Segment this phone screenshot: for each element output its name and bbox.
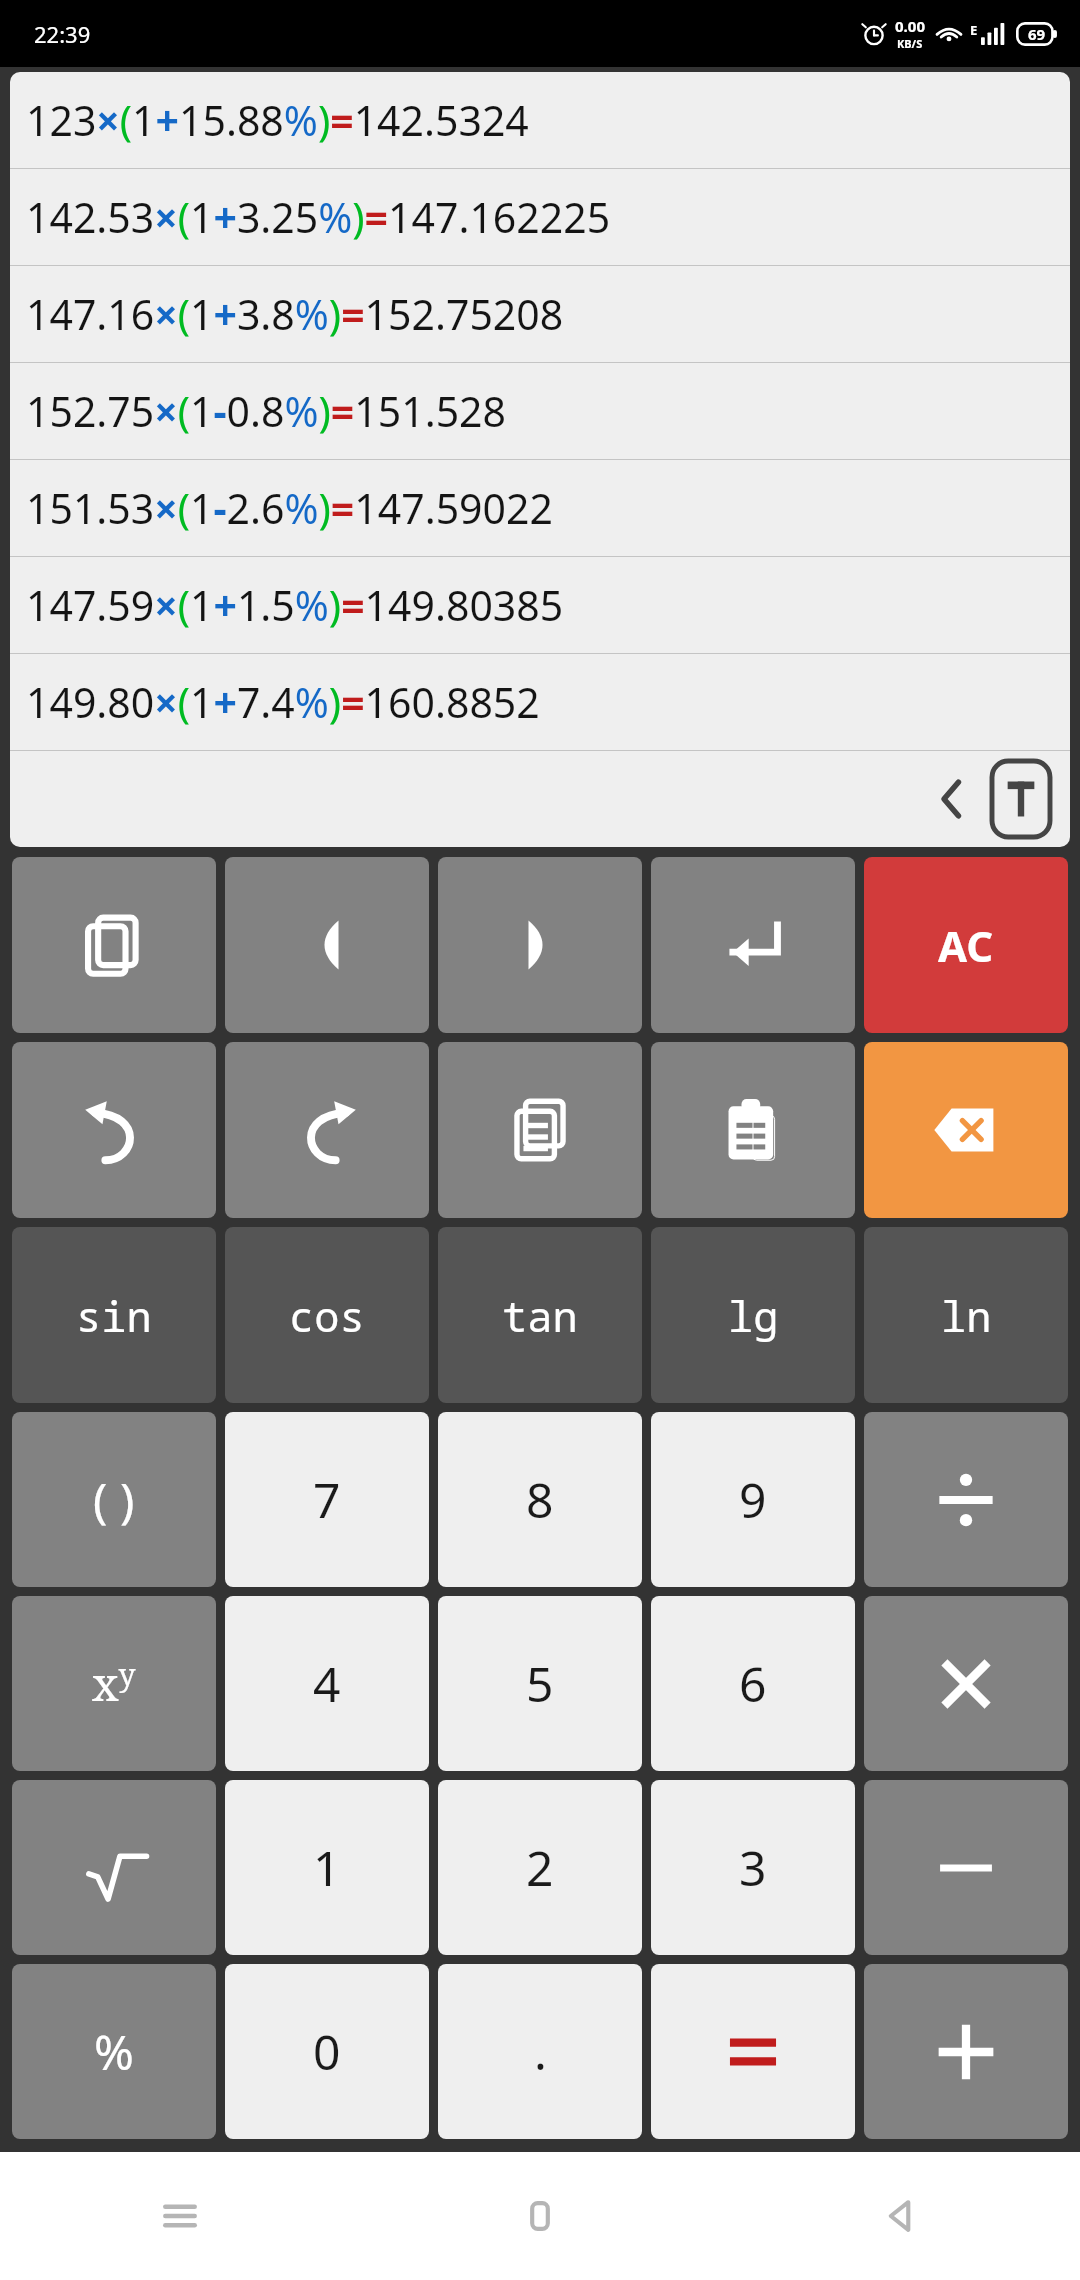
button[interactable]: Text mode bbox=[992, 761, 1050, 837]
staticText: 147.59×(1+1.5%)=149.80385 bbox=[26, 577, 564, 633]
button[interactable]: 142.53×(1+3.25%)=147.162225 bbox=[10, 169, 1070, 265]
button[interactable]: Recents bbox=[0, 2152, 360, 2280]
button[interactable]: 1 bbox=[225, 1780, 429, 1955]
button[interactable]: Divide bbox=[864, 1412, 1068, 1587]
button[interactable]: AC bbox=[864, 857, 1068, 1033]
button[interactable]: 0 bbox=[225, 1964, 429, 2139]
staticText: lg bbox=[728, 1287, 779, 1344]
button[interactable]: Next bbox=[438, 857, 642, 1033]
button[interactable]: 151.53×(1-2.6%)=147.59022 bbox=[10, 460, 1070, 556]
staticText: % bbox=[94, 2019, 134, 2084]
button[interactable]: 152.75×(1-0.8%)=151.528 bbox=[10, 363, 1070, 459]
staticText: 2 bbox=[526, 1835, 554, 1900]
button[interactable]: Multiply bbox=[864, 1596, 1068, 1771]
staticText: 1 bbox=[313, 1835, 341, 1900]
staticText: 152.75×(1-0.8%)=151.528 bbox=[26, 383, 506, 439]
staticText: tan bbox=[502, 1287, 578, 1344]
button[interactable]: ( ) bbox=[12, 1412, 216, 1587]
staticText: 147.16×(1+3.8%)=152.75208 bbox=[26, 286, 564, 342]
button[interactable]: Power bbox=[12, 1596, 216, 1771]
button[interactable]: 9 bbox=[651, 1412, 855, 1587]
staticText: 5 bbox=[526, 1651, 554, 1716]
button[interactable]: . bbox=[438, 1964, 642, 2139]
staticText: 151.53×(1-2.6%)=147.59022 bbox=[26, 480, 553, 536]
staticText: 149.80×(1+7.4%)=160.8852 bbox=[26, 674, 540, 730]
staticText: 6 bbox=[739, 1651, 767, 1716]
staticText: 7 bbox=[313, 1467, 341, 1532]
button[interactable]: 3 bbox=[651, 1780, 855, 1955]
staticText: ln bbox=[941, 1287, 992, 1344]
button[interactable]: Plus bbox=[864, 1964, 1068, 2139]
button[interactable]: Paste bbox=[651, 1042, 855, 1218]
button[interactable]: 123×(1+15.88%)=142.5324 bbox=[10, 72, 1070, 168]
button[interactable]: Move cursor left bbox=[918, 765, 986, 833]
button[interactable]: Equals bbox=[651, 1964, 855, 2139]
button[interactable]: Minus bbox=[864, 1780, 1068, 1955]
staticText: 0 bbox=[313, 2019, 341, 2084]
button[interactable]: tan bbox=[438, 1227, 642, 1403]
staticText: sin bbox=[76, 1287, 152, 1344]
button[interactable]: Previous bbox=[225, 857, 429, 1033]
button[interactable]: 147.16×(1+3.8%)=152.75208 bbox=[10, 266, 1070, 362]
button[interactable]: 149.80×(1+7.4%)=160.8852 bbox=[10, 654, 1070, 750]
button[interactable]: Home bbox=[360, 2152, 720, 2280]
staticText: 69 bbox=[1028, 24, 1046, 44]
button[interactable]: % bbox=[12, 1964, 216, 2139]
button[interactable]: lg bbox=[651, 1227, 855, 1403]
button[interactable]: Backspace bbox=[864, 1042, 1068, 1218]
staticText: KB/S bbox=[897, 36, 923, 51]
staticText: 142.53×(1+3.25%)=147.162225 bbox=[26, 189, 611, 245]
staticText: 9 bbox=[739, 1467, 767, 1532]
button[interactable]: Copy bbox=[438, 1042, 642, 1218]
staticText: E bbox=[970, 21, 978, 39]
button[interactable]: 5 bbox=[438, 1596, 642, 1771]
staticText: . bbox=[534, 2019, 547, 2084]
staticText: cos bbox=[289, 1287, 365, 1344]
button[interactable]: 7 bbox=[225, 1412, 429, 1587]
staticText: 0.00 bbox=[895, 16, 925, 36]
staticText: 22:39 bbox=[34, 19, 91, 49]
staticText: xy bbox=[92, 1652, 136, 1715]
button[interactable]: Redo bbox=[225, 1042, 429, 1218]
button[interactable]: ln bbox=[864, 1227, 1068, 1403]
staticText: 123×(1+15.88%)=142.5324 bbox=[26, 92, 529, 148]
button[interactable]: 147.59×(1+1.5%)=149.80385 bbox=[10, 557, 1070, 653]
button[interactable]: 6 bbox=[651, 1596, 855, 1771]
button[interactable]: Switch pages bbox=[12, 857, 216, 1033]
button[interactable]: Root bbox=[12, 1780, 216, 1955]
button[interactable]: 2 bbox=[438, 1780, 642, 1955]
button[interactable]: cos bbox=[225, 1227, 429, 1403]
staticText: 8 bbox=[526, 1467, 554, 1532]
button[interactable]: Enter bbox=[651, 857, 855, 1033]
button[interactable]: Back bbox=[720, 2152, 1080, 2280]
staticText: 3 bbox=[739, 1835, 767, 1900]
staticText: 4 bbox=[313, 1651, 341, 1716]
button[interactable]: sin bbox=[12, 1227, 216, 1403]
staticText: ( ) bbox=[93, 1467, 135, 1532]
button[interactable]: 4 bbox=[225, 1596, 429, 1771]
button[interactable]: Undo bbox=[12, 1042, 216, 1218]
button[interactable]: 8 bbox=[438, 1412, 642, 1587]
staticText: AC bbox=[938, 917, 994, 974]
